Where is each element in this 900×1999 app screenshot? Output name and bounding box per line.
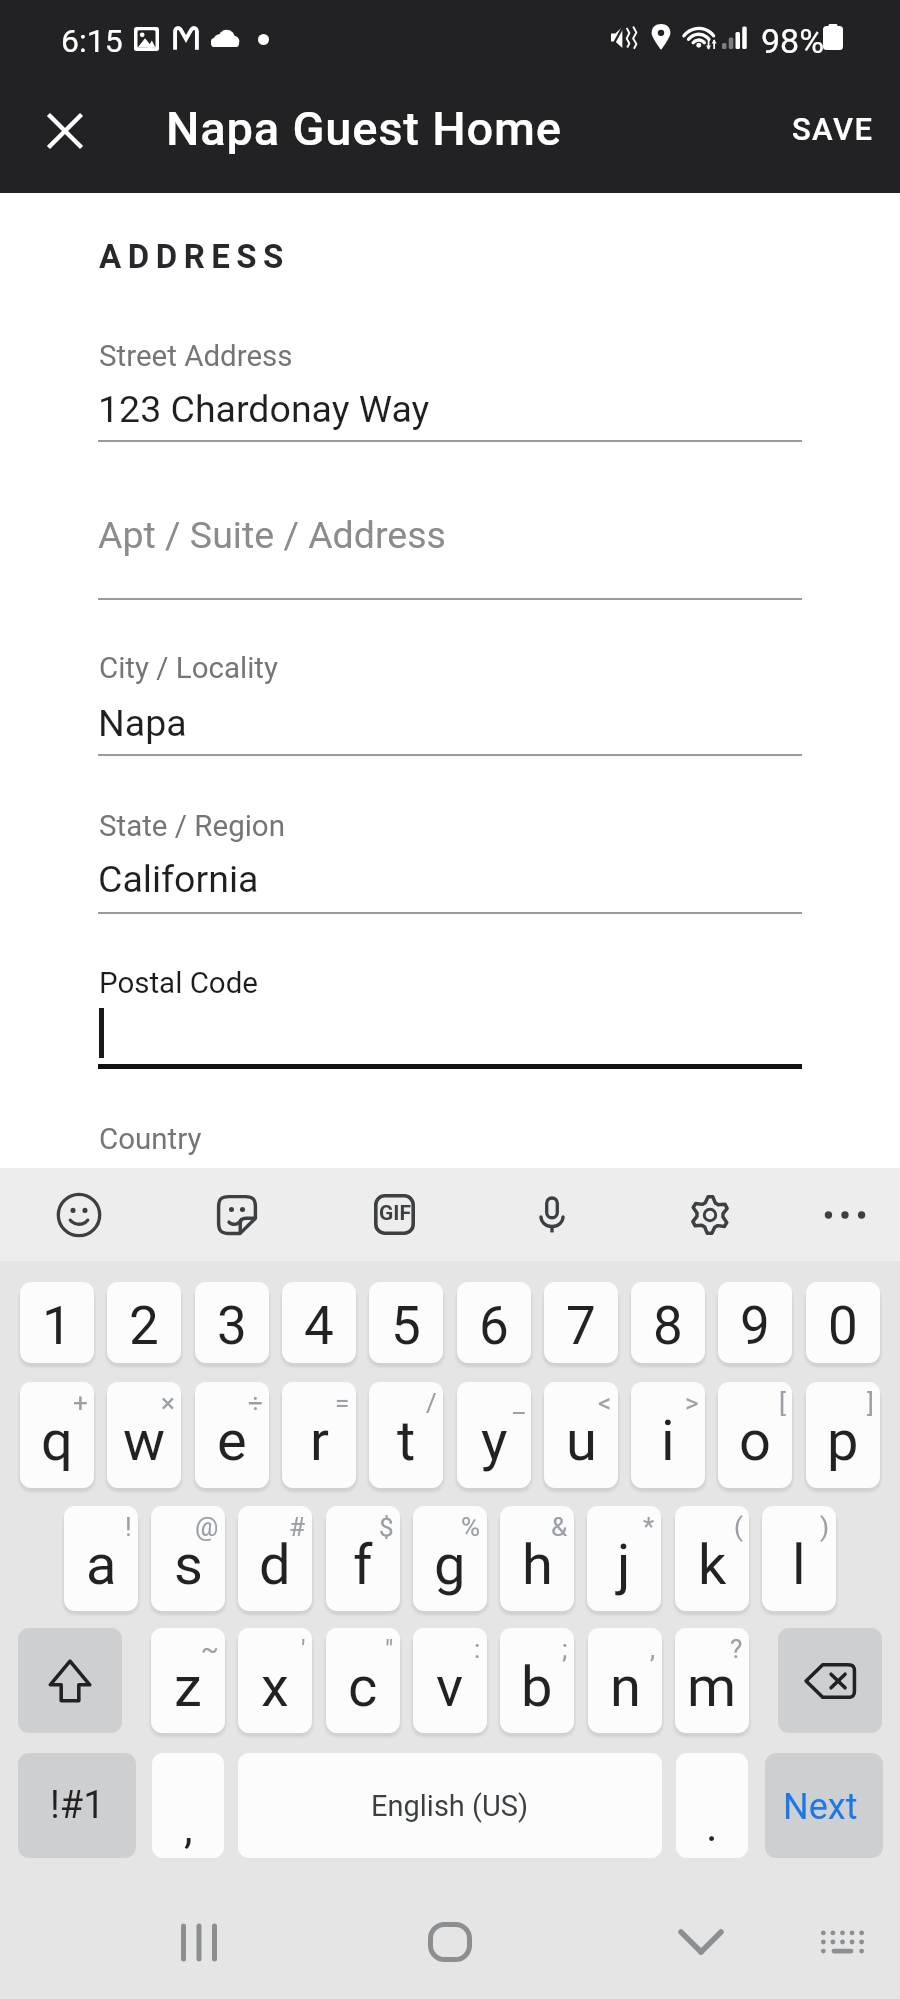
staticText: e	[217, 1408, 247, 1474]
button[interactable]: e	[195, 1382, 269, 1488]
button[interactable]: h	[500, 1506, 574, 1611]
button[interactable]: x	[238, 1628, 312, 1733]
staticText: ,	[184, 1802, 193, 1854]
button[interactable]: t	[369, 1382, 443, 1488]
staticText: 4	[304, 1295, 334, 1357]
staticText: 123 Chardonay Way	[98, 387, 430, 431]
button[interactable]: 8	[631, 1282, 705, 1363]
button[interactable]: 1	[20, 1282, 94, 1363]
staticText: (	[734, 1512, 743, 1542]
staticText: <	[598, 1388, 612, 1418]
staticText: 6:15	[61, 22, 123, 60]
button[interactable]: m	[675, 1628, 749, 1733]
button[interactable]: 2	[107, 1282, 181, 1363]
button[interactable]: i	[631, 1382, 705, 1488]
staticText: n	[610, 1654, 641, 1720]
button[interactable]: Symbols	[18, 1753, 136, 1858]
button[interactable]: w	[107, 1382, 181, 1488]
staticText: w	[123, 1408, 166, 1474]
staticText: *	[643, 1512, 655, 1542]
staticText: City / Locality	[99, 651, 278, 686]
staticText: State / Region	[99, 809, 285, 844]
staticText: d	[259, 1532, 291, 1598]
button[interactable]: q	[20, 1382, 94, 1488]
staticText: 5	[391, 1295, 421, 1357]
staticText: :	[474, 1634, 481, 1664]
button[interactable]: 5	[369, 1282, 443, 1363]
staticText: u	[566, 1408, 597, 1474]
staticText: 9	[740, 1295, 770, 1357]
staticText: 0	[828, 1295, 858, 1357]
button[interactable]: u	[544, 1382, 618, 1488]
button[interactable]: Change keyboard	[792, 1905, 892, 1979]
staticText: @	[195, 1512, 219, 1542]
button[interactable]: Backspace	[778, 1628, 882, 1733]
staticText: Napa	[98, 701, 187, 745]
button[interactable]: 6	[457, 1282, 531, 1363]
staticText: p	[827, 1408, 859, 1474]
button[interactable]: y	[457, 1382, 531, 1488]
button[interactable]: .	[676, 1753, 748, 1858]
button[interactable]: State / Region	[98, 793, 802, 934]
button[interactable]: English (US)	[238, 1753, 662, 1858]
staticText: h	[522, 1532, 553, 1598]
button[interactable]: c	[326, 1628, 400, 1733]
button[interactable]: SAVE	[778, 79, 888, 179]
button[interactable]: r	[282, 1382, 356, 1488]
staticText: s	[174, 1532, 203, 1598]
button[interactable]: a	[64, 1506, 138, 1611]
staticText: ×	[161, 1388, 175, 1418]
staticText: 7	[566, 1295, 596, 1357]
button[interactable]: n	[588, 1628, 662, 1733]
button[interactable]: Keyboard settings	[664, 1168, 756, 1261]
button[interactable]: z	[151, 1628, 225, 1733]
staticText: ]	[867, 1388, 874, 1418]
button[interactable]: p	[806, 1382, 880, 1488]
staticText: ,	[650, 1634, 656, 1664]
staticText: Country	[99, 1122, 202, 1157]
button[interactable]: Emoji	[33, 1168, 125, 1261]
button[interactable]: g	[413, 1506, 487, 1611]
button[interactable]: ,	[152, 1753, 224, 1858]
button[interactable]: Close	[22, 88, 108, 174]
button[interactable]: d	[238, 1506, 312, 1611]
button[interactable]: v	[413, 1628, 487, 1733]
staticText: 98%	[761, 21, 825, 61]
button[interactable]: 7	[544, 1282, 618, 1363]
staticText: f	[353, 1532, 373, 1598]
button[interactable]: o	[718, 1382, 792, 1488]
button[interactable]: GIF	[348, 1168, 440, 1261]
staticText: !#1	[50, 1783, 105, 1828]
staticText: =	[335, 1388, 350, 1418]
button[interactable]: k	[675, 1506, 749, 1611]
button[interactable]: j	[587, 1506, 661, 1611]
button[interactable]: 3	[195, 1282, 269, 1363]
button[interactable]: Apt / Suite / Address	[98, 493, 802, 622]
button[interactable]: 9	[718, 1282, 792, 1363]
button[interactable]: Home	[400, 1905, 500, 1979]
staticText: %	[461, 1512, 481, 1542]
staticText: i	[661, 1408, 675, 1474]
staticText: Next	[783, 1786, 858, 1828]
button[interactable]: 4	[282, 1282, 356, 1363]
button[interactable]: Stickers	[191, 1168, 283, 1261]
button[interactable]: f	[326, 1506, 400, 1611]
button[interactable]: Shift	[18, 1628, 122, 1733]
button[interactable]: Recent apps	[149, 1905, 249, 1979]
button[interactable]: b	[500, 1628, 574, 1733]
button[interactable]: l	[762, 1506, 836, 1611]
button[interactable]: Hide keyboard	[651, 1905, 751, 1979]
button[interactable]: s	[151, 1506, 225, 1611]
staticText: !	[125, 1512, 132, 1542]
staticText: ;	[562, 1634, 568, 1664]
button[interactable]: 0	[806, 1282, 880, 1363]
button[interactable]: Street Address	[98, 323, 802, 462]
button[interactable]: Voice input	[506, 1168, 598, 1261]
staticText: b	[521, 1654, 553, 1720]
staticText: '	[301, 1634, 306, 1664]
button[interactable]: Next	[765, 1753, 883, 1858]
button[interactable]: More options	[799, 1168, 891, 1261]
button[interactable]: Postal Code	[98, 950, 802, 1086]
staticText: t	[397, 1408, 416, 1474]
button[interactable]: City / Locality	[98, 635, 802, 776]
